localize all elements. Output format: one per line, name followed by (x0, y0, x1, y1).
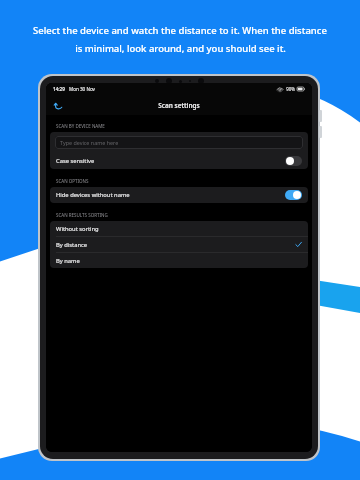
staticText: Case sensitive (56, 157, 95, 165)
button[interactable]: Toggle on (285, 190, 302, 200)
staticText: By distance (56, 241, 88, 249)
button[interactable]: Back (50, 97, 66, 113)
staticText: Type device name here (60, 139, 119, 146)
button[interactable]: Toggle off (285, 156, 302, 166)
staticText: Without sorting (56, 225, 99, 233)
staticText: Select the device and watch the distance… (33, 24, 327, 37)
staticText: Mon 30 Nov (69, 86, 95, 92)
staticText: 90% (286, 86, 295, 92)
staticText: is minimal, look around, and you should … (75, 42, 286, 55)
staticText: SCAN OPTIONS (56, 178, 89, 184)
button[interactable]: Type device name here (55, 136, 303, 149)
button[interactable]: By distance (50, 237, 308, 252)
staticText: Scan settings (158, 101, 200, 110)
staticText: SCAN RESULTS SORTING (56, 212, 108, 218)
button[interactable]: Case sensitive (50, 153, 308, 169)
button[interactable]: Hide devices without name (50, 187, 308, 203)
staticText: SCAN BY DEVICE NAME (56, 123, 105, 129)
button[interactable]: Without sorting (50, 221, 308, 236)
button[interactable]: By name (50, 253, 308, 268)
staticText: 14:29 (53, 86, 65, 92)
staticText: By name (56, 257, 80, 265)
staticText: Hide devices without name (56, 191, 130, 199)
